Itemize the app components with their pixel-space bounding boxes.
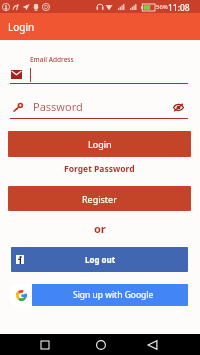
button[interactable]: Show password <box>170 99 186 115</box>
staticText: Password <box>33 99 83 114</box>
staticText: Email Address <box>30 55 74 64</box>
staticText: Log out <box>85 254 116 265</box>
staticText: Register <box>82 193 117 205</box>
staticText: Sign up with Google <box>73 289 154 301</box>
staticText: Login <box>88 138 112 150</box>
button[interactable]: Forget Password <box>54 162 144 176</box>
staticText: Login <box>8 20 35 34</box>
button[interactable]: Back <box>144 336 161 353</box>
button[interactable]: Log out <box>11 247 188 272</box>
button[interactable]: Email Address <box>10 52 188 84</box>
staticText: 56% <box>156 3 168 11</box>
button[interactable]: Home <box>92 336 109 353</box>
button[interactable]: Register <box>8 186 191 211</box>
staticText: 11:08 <box>168 2 190 14</box>
button[interactable]: Login <box>8 131 191 157</box>
button[interactable]: Recent apps <box>36 336 53 353</box>
staticText: or <box>94 221 106 234</box>
staticText: Forget Password <box>64 163 135 175</box>
button[interactable]: Password <box>10 96 188 119</box>
button[interactable]: Sign up with Google <box>10 284 188 306</box>
